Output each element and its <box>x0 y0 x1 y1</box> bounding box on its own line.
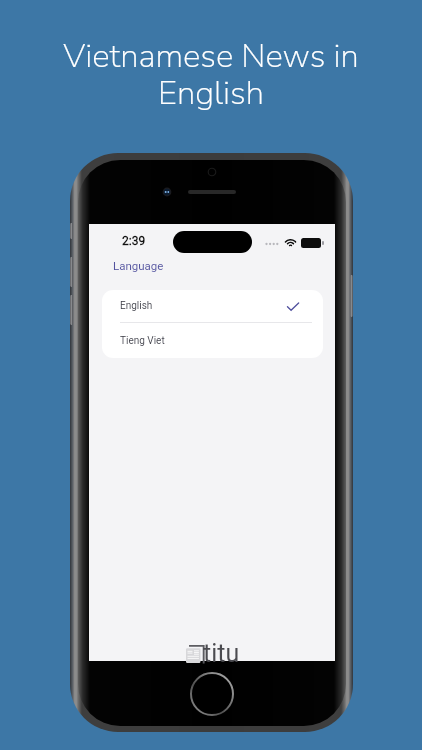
staticText: titu <box>203 639 240 668</box>
button[interactable]: Language <box>113 259 164 272</box>
button[interactable]: English <box>102 290 323 322</box>
staticText: Language <box>113 259 164 272</box>
other: Home <box>188 670 236 718</box>
staticText: English <box>120 300 153 312</box>
staticText: Tieng Viet <box>120 335 165 347</box>
button[interactable]: Tieng Viet <box>102 323 323 358</box>
staticText: 2:39 <box>122 234 146 248</box>
staticText: Vietnamese News in English <box>61 34 361 116</box>
